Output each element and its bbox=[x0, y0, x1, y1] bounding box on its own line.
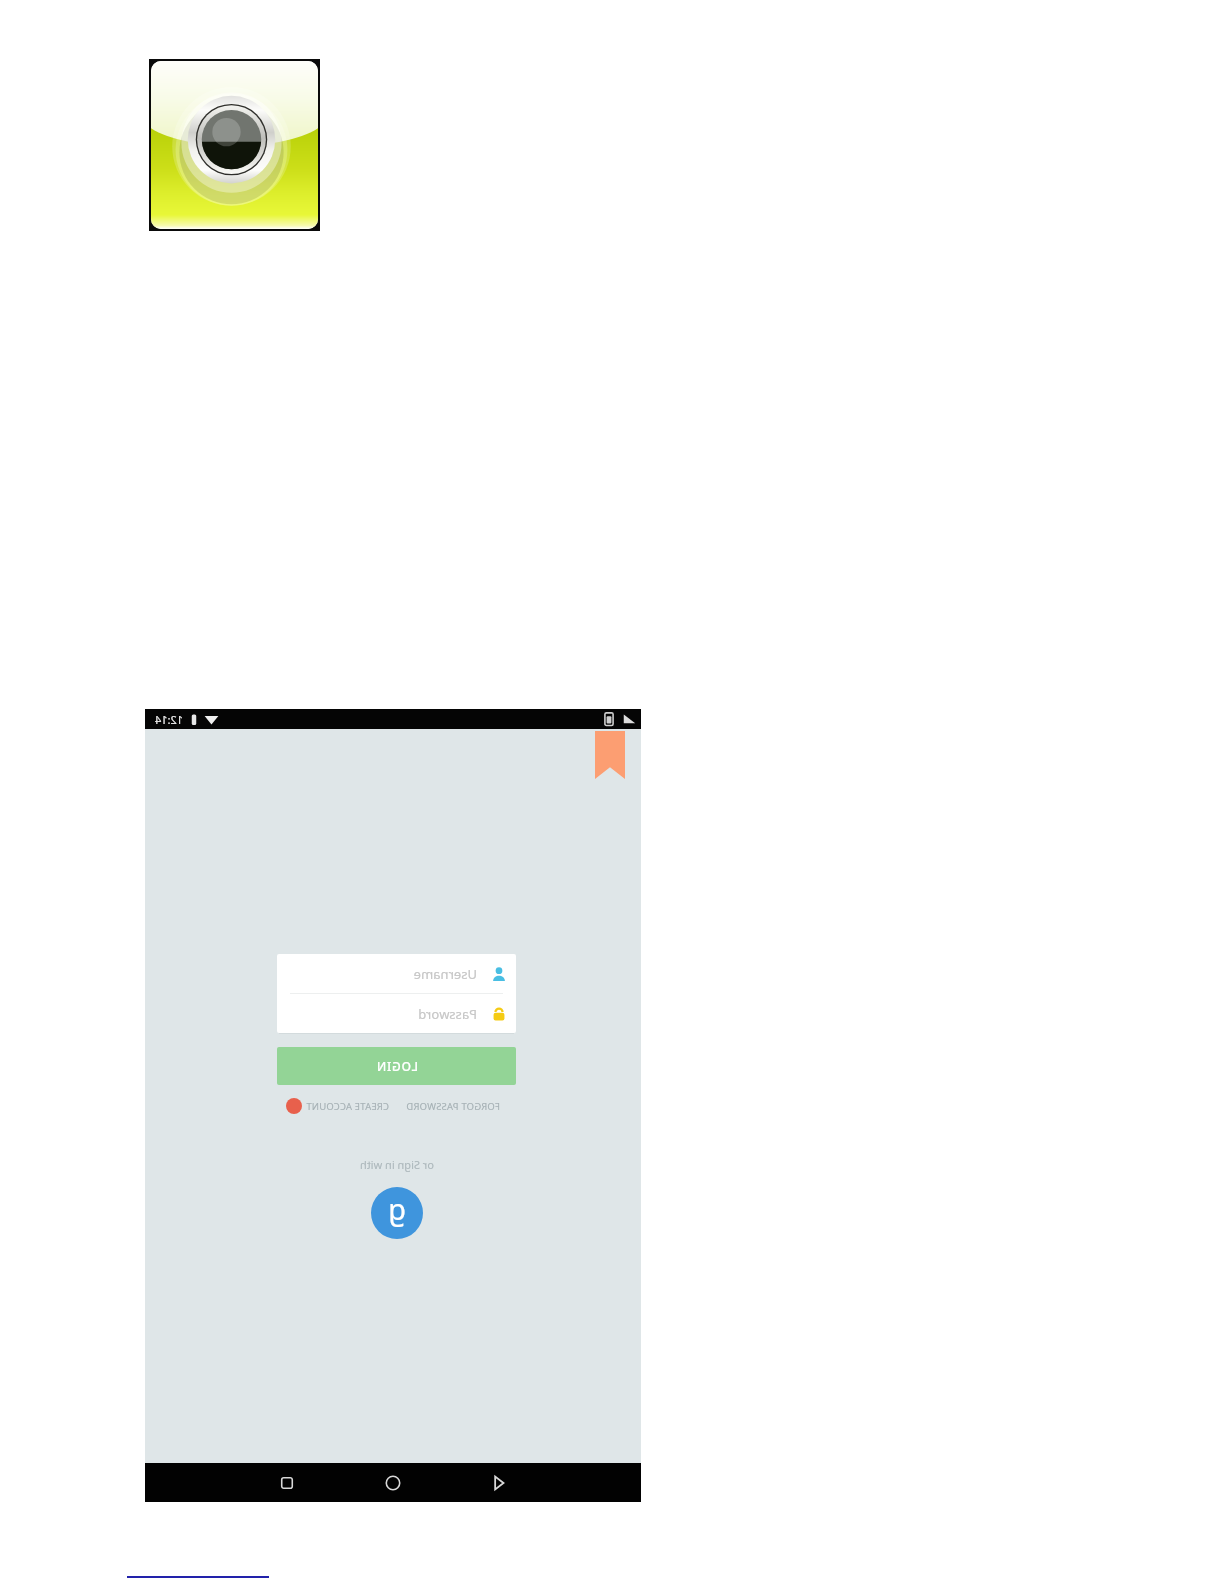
staticText: or Sign in with bbox=[359, 1157, 434, 1172]
staticText: 12:14 bbox=[154, 712, 183, 727]
staticText: CREATE ACCOUNT bbox=[306, 1100, 389, 1113]
staticText: LOGIN bbox=[376, 1058, 418, 1074]
button[interactable]: Password bbox=[290, 994, 507, 1033]
button[interactable]: CREATE ACCOUNT bbox=[286, 1098, 389, 1114]
button[interactable]: Back bbox=[446, 1463, 552, 1502]
button[interactable]: FORGOT PASSWORD bbox=[406, 1100, 500, 1113]
button[interactable]: LOGIN bbox=[277, 1047, 516, 1085]
button[interactable]: Sign in with Google bbox=[371, 1187, 423, 1239]
button[interactable]: Home bbox=[340, 1463, 446, 1502]
staticText: Username bbox=[413, 965, 477, 983]
button[interactable]: Bookmark bbox=[595, 731, 625, 779]
staticText: Password bbox=[418, 1005, 477, 1023]
button[interactable]: Recent apps bbox=[234, 1463, 340, 1502]
staticText: g bbox=[388, 1189, 406, 1228]
button[interactable]: Username bbox=[290, 954, 507, 993]
